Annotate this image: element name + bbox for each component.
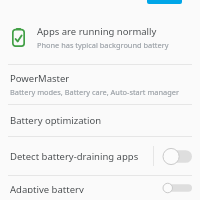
button[interactable]: Battery status <box>0 25 200 50</box>
other: Battery status <box>12 28 25 47</box>
button[interactable]: Toggle Detect battery-draining apps <box>163 148 192 165</box>
button[interactable]: Battery optimization <box>0 105 200 136</box>
button[interactable]: Action button <box>147 0 182 4</box>
button[interactable]: Adaptive battery <box>0 176 200 200</box>
staticText: Phone has typical background battery usa… <box>37 40 190 50</box>
button[interactable]: Toggle Adaptive battery <box>163 183 192 193</box>
button[interactable]: Detect battery-draining apps <box>0 137 200 175</box>
staticText: PowerMaster <box>10 72 70 85</box>
staticText: Battery modes, Battery care, Auto-start … <box>10 87 179 97</box>
button[interactable]: PowerMaster <box>0 65 200 104</box>
staticText: Adaptive battery <box>10 183 84 193</box>
staticText: Detect battery-draining apps <box>10 150 139 163</box>
staticText: Apps are running normally <box>37 25 157 38</box>
staticText: Battery optimization <box>10 114 102 127</box>
